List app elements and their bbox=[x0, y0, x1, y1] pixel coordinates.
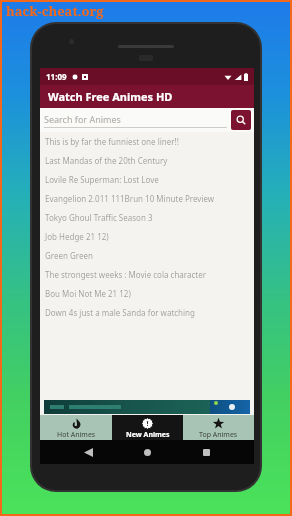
staticText: Search for Animes bbox=[44, 113, 121, 125]
staticText: This is by far the funniest one liner!! bbox=[45, 136, 179, 147]
button[interactable]: Green Green bbox=[40, 246, 254, 265]
button[interactable]: Tokyo Ghoul Traffic Season 3 bbox=[40, 208, 254, 227]
button[interactable]: Home bbox=[136, 441, 158, 463]
button[interactable]: Last Mandas of the 20th Century bbox=[40, 151, 254, 170]
staticText: Evangelion 2.011 111Brun 10 Minute Previ… bbox=[45, 193, 215, 204]
button[interactable]: Advertisement bbox=[44, 400, 210, 414]
staticText: Down 4s just a male Sanda for watching bbox=[45, 307, 195, 318]
staticText: Tokyo Ghoul Traffic Season 3 bbox=[45, 212, 153, 223]
staticText: 11:09 bbox=[46, 71, 67, 82]
button[interactable]: Down 4s just a male Sanda for watching bbox=[40, 303, 254, 322]
staticText: Green Green bbox=[45, 250, 93, 261]
button[interactable]: Hot Animes bbox=[40, 415, 112, 440]
staticText: Top Animes bbox=[199, 430, 238, 440]
staticText: New Animes bbox=[126, 430, 170, 440]
button[interactable]: Top Animes bbox=[183, 415, 254, 440]
staticText: Job Hedge 21 12) bbox=[45, 231, 109, 242]
staticText: hack-cheat.org bbox=[6, 2, 104, 20]
button[interactable]: Lovile Re Superman: Lost Love bbox=[40, 170, 254, 189]
staticText: Watch Free Animes HD bbox=[48, 89, 173, 104]
staticText: Hot Animes bbox=[57, 430, 96, 440]
button[interactable]: Recent apps bbox=[195, 441, 217, 463]
button[interactable]: Job Hedge 21 12) bbox=[40, 227, 254, 246]
staticText: Bou Moi Not Me 21 12) bbox=[45, 288, 131, 299]
button[interactable]: Bou Moi Not Me 21 12) bbox=[40, 284, 254, 303]
button[interactable]: The strongest weeks : Movie cola charact… bbox=[40, 265, 254, 284]
button[interactable]: This is by far the funniest one liner!! bbox=[40, 132, 254, 151]
staticText: The strongest weeks : Movie cola charact… bbox=[45, 269, 206, 280]
staticText: Lovile Re Superman: Lost Love bbox=[45, 174, 159, 185]
staticText: Last Mandas of the 20th Century bbox=[45, 155, 168, 166]
button[interactable]: Search bbox=[231, 110, 251, 130]
button[interactable]: New Animes bbox=[112, 415, 183, 440]
button[interactable]: Back bbox=[77, 441, 99, 463]
button[interactable]: Evangelion 2.011 111Brun 10 Minute Previ… bbox=[40, 189, 254, 208]
